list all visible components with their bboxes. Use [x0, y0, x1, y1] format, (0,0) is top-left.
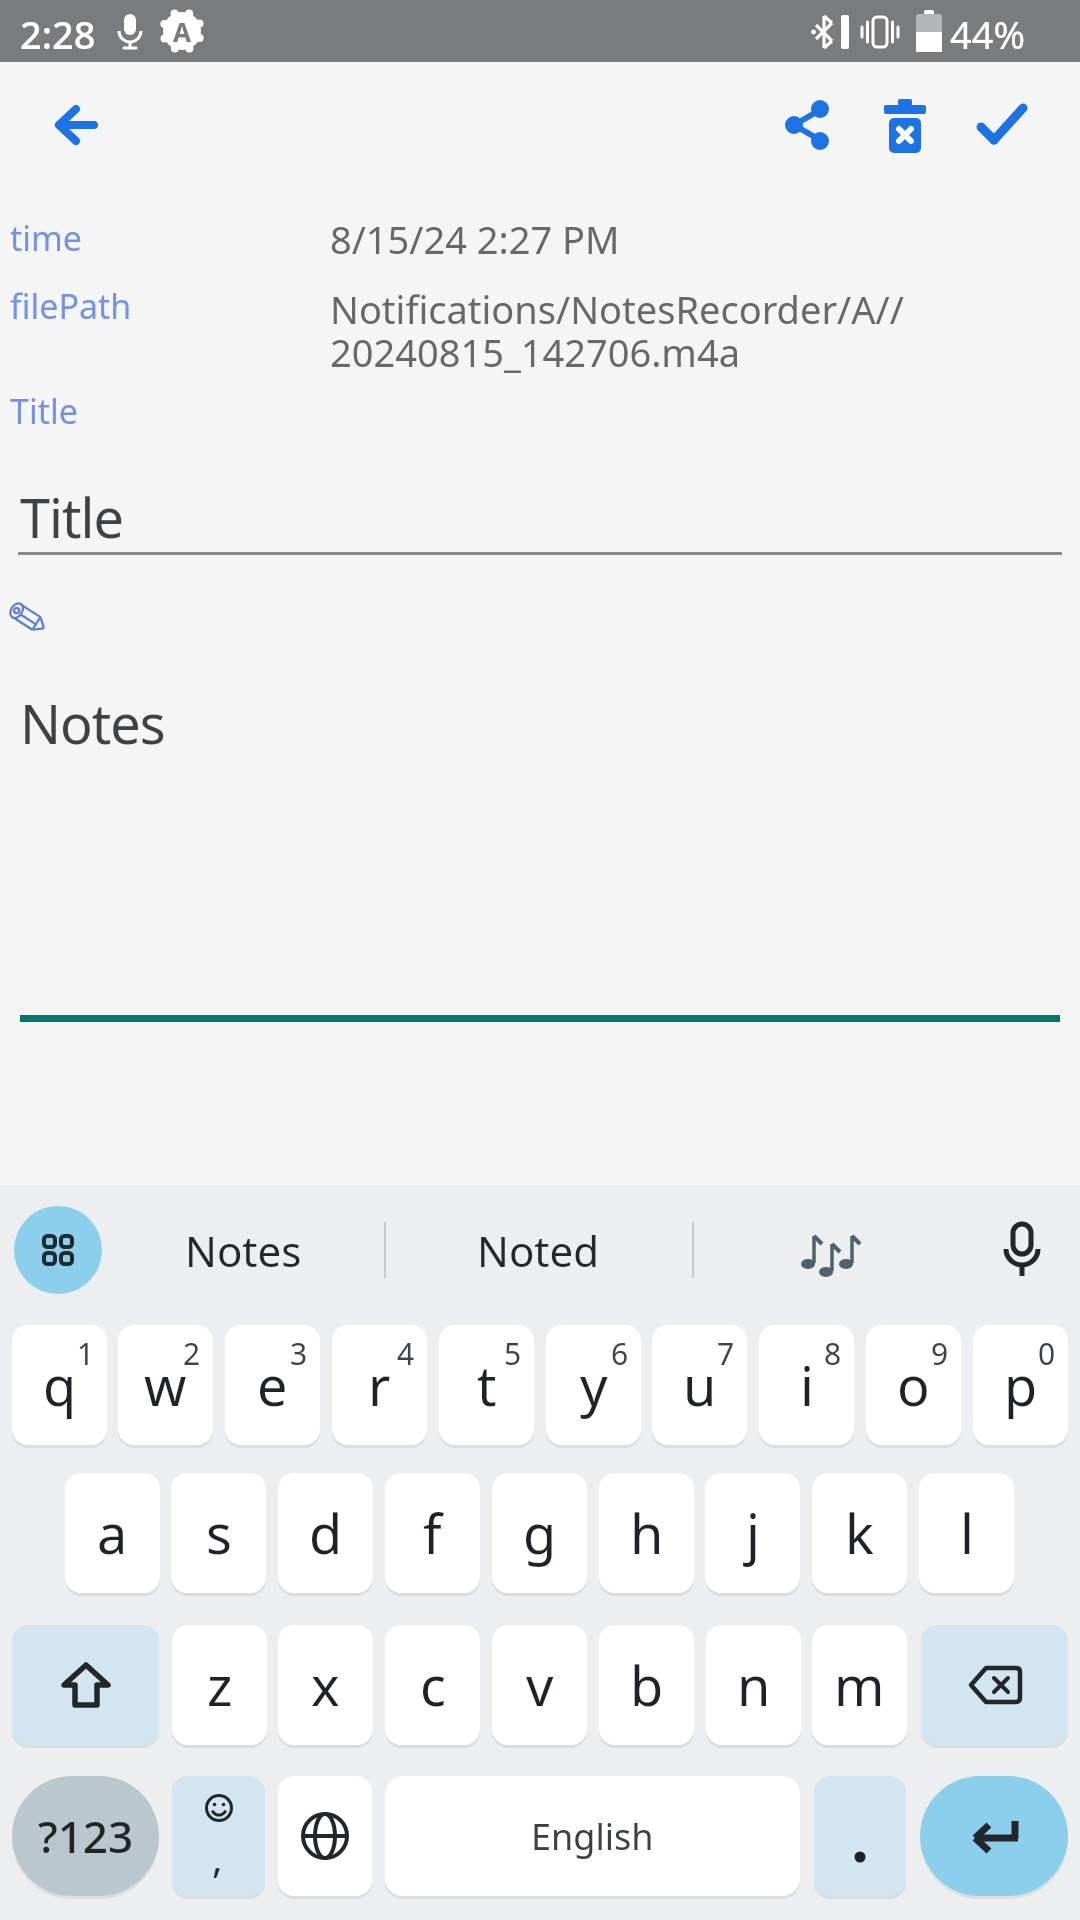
staticText: 4	[397, 1333, 415, 1374]
button[interactable]	[278, 1776, 372, 1896]
button[interactable]	[800, 1222, 864, 1278]
staticText: 6	[611, 1333, 629, 1374]
staticText: Title	[20, 480, 123, 554]
staticText: A	[173, 14, 191, 49]
button[interactable]: z	[172, 1625, 267, 1745]
button[interactable]: Title	[18, 460, 1062, 555]
button[interactable]: English	[385, 1776, 800, 1896]
staticText: n	[737, 1648, 771, 1722]
staticText: f	[423, 1496, 442, 1570]
staticText: 44%	[950, 8, 1026, 60]
staticText: 1	[77, 1333, 95, 1374]
staticText: v	[526, 1648, 554, 1722]
staticText: d	[309, 1496, 343, 1570]
button[interactable]: ?123	[12, 1776, 159, 1896]
staticText: s	[206, 1496, 232, 1570]
staticText: filePath	[10, 283, 132, 329]
button[interactable]: d	[278, 1473, 373, 1593]
staticText: Notifications/NotesRecorder/A//	[330, 283, 904, 335]
staticText: 2	[183, 1333, 201, 1374]
button[interactable]	[54, 103, 98, 147]
button[interactable]	[784, 100, 830, 150]
staticText: c	[420, 1648, 446, 1722]
button[interactable]	[14, 1206, 102, 1294]
button[interactable]: u	[652, 1325, 747, 1445]
button[interactable]: c	[385, 1625, 480, 1745]
staticText: time	[10, 215, 83, 261]
staticText: e	[257, 1348, 288, 1422]
button[interactable]: q	[12, 1325, 107, 1445]
button[interactable]: v	[492, 1625, 587, 1745]
staticText: ?123	[38, 1806, 134, 1866]
staticText: i	[800, 1348, 814, 1422]
staticText: t	[477, 1348, 497, 1422]
staticText: x	[311, 1648, 340, 1722]
staticText: o	[897, 1348, 930, 1422]
staticText: p	[1004, 1348, 1038, 1422]
button[interactable]: l	[919, 1473, 1014, 1593]
button[interactable]	[814, 1776, 906, 1896]
button[interactable]: i	[759, 1325, 854, 1445]
button[interactable]: r	[332, 1325, 427, 1445]
staticText: g	[523, 1496, 557, 1570]
staticText: 8	[824, 1333, 842, 1374]
button[interactable]: Notes	[20, 660, 1060, 1022]
staticText: q	[43, 1348, 77, 1422]
button[interactable]: x	[278, 1625, 373, 1745]
staticText: English	[531, 1812, 654, 1861]
staticText: h	[630, 1496, 664, 1570]
staticText: b	[630, 1648, 664, 1722]
button[interactable]: ,	[172, 1776, 265, 1896]
button[interactable]	[977, 102, 1027, 146]
staticText: Noted	[477, 1222, 600, 1279]
button[interactable]: t	[439, 1325, 534, 1445]
button[interactable]: Noted	[386, 1206, 690, 1294]
staticText: m	[834, 1648, 885, 1722]
button[interactable]: o	[866, 1325, 961, 1445]
button[interactable]	[1000, 1222, 1044, 1278]
button[interactable]: g	[492, 1473, 587, 1593]
button[interactable]: j	[705, 1473, 800, 1593]
button[interactable]: e	[225, 1325, 320, 1445]
button[interactable]: a	[65, 1473, 160, 1593]
button[interactable]: h	[599, 1473, 694, 1593]
staticText: z	[207, 1648, 233, 1722]
button[interactable]: f	[385, 1473, 480, 1593]
button[interactable]	[920, 1776, 1068, 1896]
staticText: 3	[290, 1333, 308, 1374]
staticText: Title	[10, 388, 78, 434]
staticText: r	[368, 1348, 391, 1422]
button[interactable]: n	[706, 1625, 801, 1745]
staticText: Notes	[20, 686, 165, 760]
staticText: 8/15/24 2:27 PM	[330, 213, 620, 265]
button[interactable]: s	[171, 1473, 266, 1593]
button[interactable]: w	[118, 1325, 213, 1445]
staticText: a	[97, 1496, 128, 1570]
button[interactable]: b	[599, 1625, 694, 1745]
staticText: k	[845, 1496, 874, 1570]
button[interactable]: Notes	[103, 1206, 384, 1294]
staticText: 5	[504, 1333, 522, 1374]
staticText: j	[746, 1496, 760, 1570]
button[interactable]: k	[812, 1473, 907, 1593]
button[interactable]: y	[546, 1325, 641, 1445]
staticText: l	[960, 1496, 974, 1570]
staticText: y	[580, 1348, 608, 1422]
staticText: 9	[931, 1333, 949, 1374]
staticText: ,	[212, 1830, 223, 1884]
button[interactable]	[881, 99, 929, 153]
button[interactable]: p	[973, 1325, 1068, 1445]
button[interactable]	[921, 1625, 1068, 1745]
staticText: u	[683, 1348, 717, 1422]
staticText: 20240815_142706.m4a	[330, 326, 740, 378]
staticText: w	[144, 1348, 187, 1422]
staticText: Notes	[185, 1222, 302, 1279]
staticText: 7	[717, 1333, 735, 1374]
button[interactable]	[12, 1625, 159, 1745]
staticText: 2:28	[20, 8, 96, 60]
staticText: 0	[1038, 1333, 1056, 1374]
button[interactable]: m	[812, 1625, 907, 1745]
